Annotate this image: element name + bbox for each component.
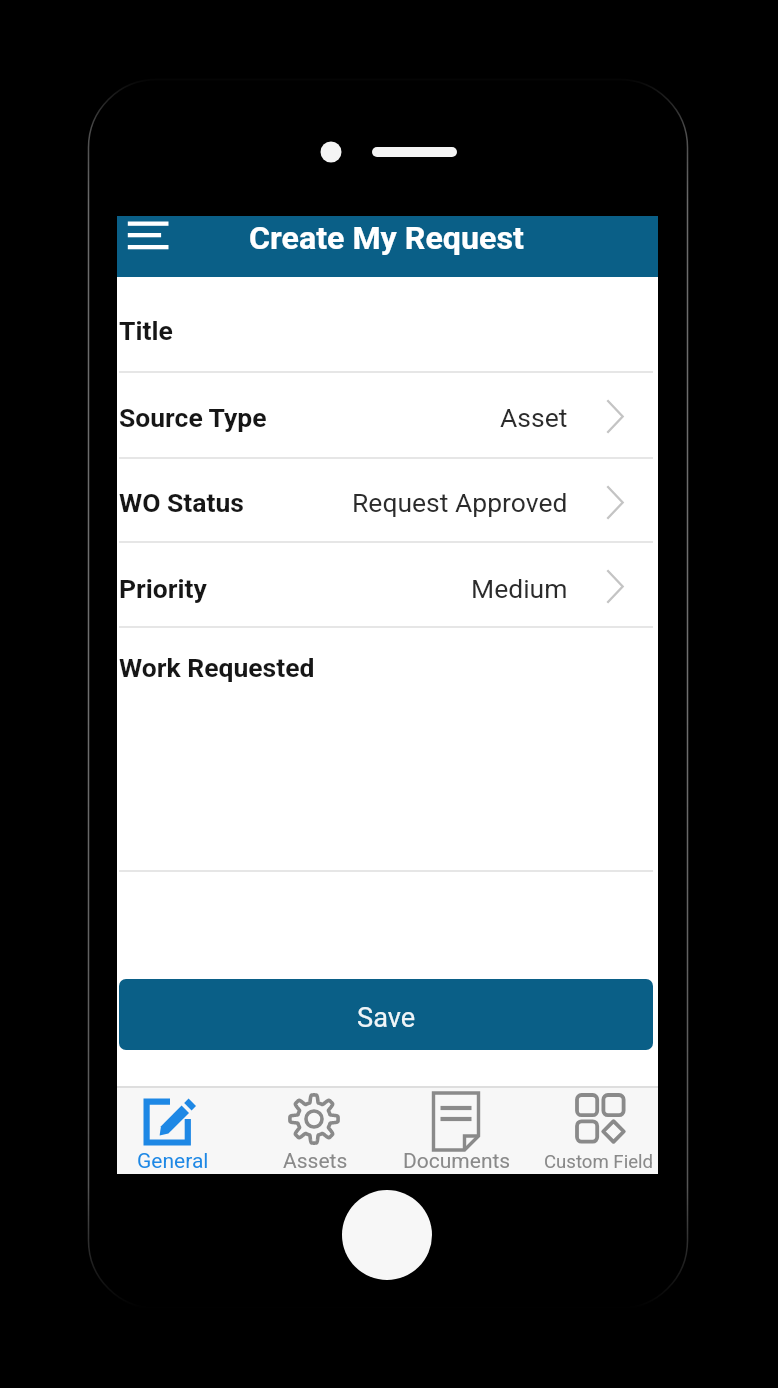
button[interactable]: Assets <box>244 1088 386 1174</box>
button[interactable]: Priority <box>119 543 653 628</box>
button[interactable]: WO Status <box>119 459 653 543</box>
staticText: Custom Field <box>544 1151 654 1173</box>
button[interactable]: Title <box>119 277 653 373</box>
button[interactable]: Documents <box>386 1088 528 1174</box>
staticText: Documents <box>403 1149 511 1174</box>
staticText: Title <box>119 315 173 346</box>
staticText: Assets <box>283 1149 348 1174</box>
staticText: Medium <box>471 573 568 604</box>
staticText: Create My Request <box>249 219 524 257</box>
staticText: Work Requested <box>119 652 315 683</box>
button[interactable]: Open navigation menu <box>117 216 181 268</box>
staticText: WO Status <box>119 487 244 518</box>
button[interactable]: Source Type <box>119 373 653 459</box>
button[interactable]: General <box>117 1088 244 1174</box>
staticText: General <box>137 1149 209 1174</box>
staticText: Request Approved <box>352 487 568 518</box>
staticText: Priority <box>119 573 207 604</box>
staticText: Source Type <box>119 402 267 433</box>
button[interactable]: Save <box>119 979 653 1050</box>
staticText: Save <box>357 1002 416 1034</box>
staticText: Asset <box>500 402 568 433</box>
button[interactable]: Custom Field <box>528 1088 658 1174</box>
